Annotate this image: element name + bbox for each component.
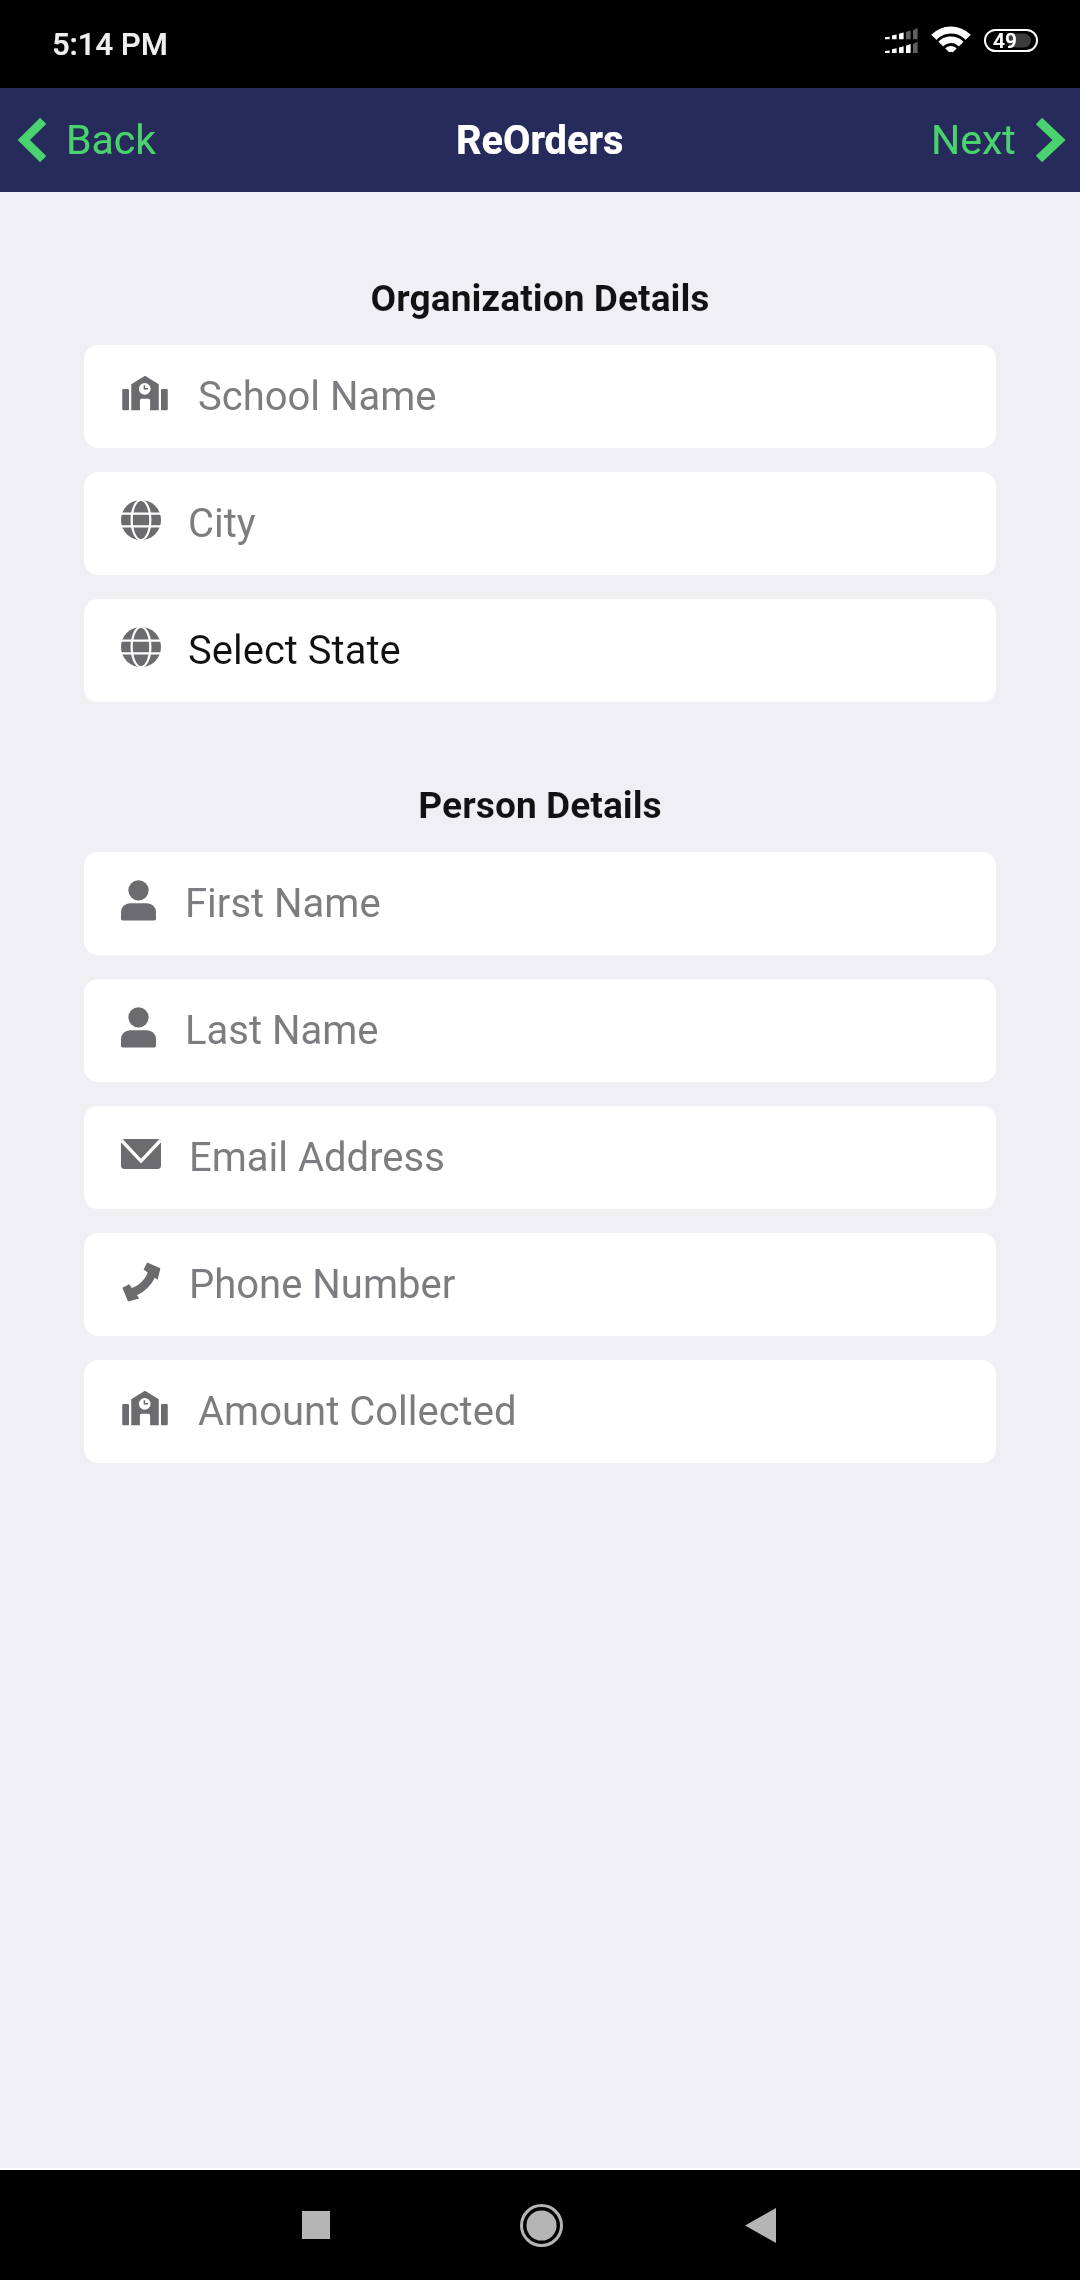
button[interactable]: Email Address <box>84 1106 996 1209</box>
staticText: Select State <box>188 627 401 674</box>
button[interactable]: Next <box>907 102 1080 178</box>
staticText: Email Address <box>189 1134 445 1181</box>
staticText: ReOrders <box>456 117 624 164</box>
button[interactable]: First Name <box>84 852 996 955</box>
staticText: Last Name <box>185 1007 379 1054</box>
button[interactable]: Phone Number <box>84 1233 996 1336</box>
staticText: Person Details <box>0 783 1080 827</box>
button[interactable]: City <box>84 472 996 575</box>
button[interactable]: Select State <box>84 599 996 702</box>
button[interactable]: Recent apps <box>256 2170 376 2280</box>
button[interactable]: Last Name <box>84 979 996 1082</box>
staticText: Amount Collected <box>198 1388 517 1435</box>
staticText: Phone Number <box>189 1261 456 1308</box>
staticText: Back <box>66 116 157 164</box>
staticText: Organization Details <box>0 276 1080 320</box>
button[interactable]: Amount Collected <box>84 1360 996 1463</box>
button[interactable]: Back <box>0 102 181 178</box>
button[interactable]: Home <box>481 2170 601 2280</box>
staticText: School Name <box>198 373 437 420</box>
staticText: First Name <box>185 880 381 927</box>
staticText: City <box>188 500 256 547</box>
button[interactable]: Back <box>700 2170 820 2280</box>
staticText: 49 <box>993 29 1017 52</box>
staticText: Next <box>931 116 1016 164</box>
button[interactable]: School Name <box>84 345 996 448</box>
staticText: 5:14 PM <box>52 26 168 62</box>
